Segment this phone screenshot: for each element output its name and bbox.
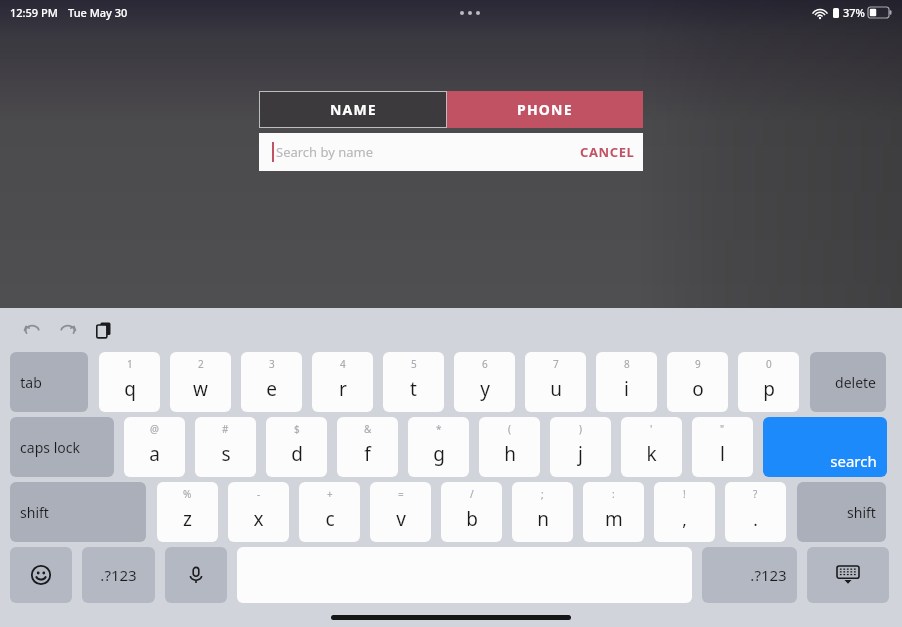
button[interactable]: ( xyxy=(479,417,540,477)
staticText: e xyxy=(266,376,277,402)
staticText: w xyxy=(193,376,208,402)
button[interactable]: : xyxy=(583,482,644,542)
staticText: l xyxy=(720,441,725,467)
staticText: CANCEL xyxy=(580,143,635,161)
staticText: NAME xyxy=(330,100,377,119)
staticText: t xyxy=(410,376,417,402)
staticText: n xyxy=(537,506,549,532)
staticText: - xyxy=(257,487,261,501)
button[interactable]: ) xyxy=(550,417,611,477)
staticText: shift xyxy=(847,503,876,522)
staticText: h xyxy=(504,441,516,467)
staticText: q xyxy=(124,376,136,402)
staticText: s xyxy=(221,441,231,467)
staticText: . xyxy=(753,508,758,531)
button[interactable]: ; xyxy=(512,482,573,542)
button[interactable]: 8 xyxy=(596,352,657,412)
button[interactable]: ! xyxy=(654,482,715,542)
staticText: & xyxy=(364,422,372,436)
button[interactable]: .?123 xyxy=(702,547,797,603)
staticText: g xyxy=(433,441,445,467)
button[interactable]: Paste xyxy=(86,312,122,348)
staticText: b xyxy=(466,506,478,532)
staticText: ? xyxy=(753,487,758,501)
button[interactable]: .?123 xyxy=(82,547,155,603)
button[interactable]: 7 xyxy=(525,352,586,412)
button[interactable]: " xyxy=(692,417,753,477)
button[interactable] xyxy=(165,547,227,603)
button[interactable]: 0 xyxy=(738,352,799,412)
staticText: * xyxy=(436,422,442,436)
staticText: ) xyxy=(579,422,582,436)
button[interactable]: 5 xyxy=(383,352,444,412)
button[interactable]: caps lock xyxy=(10,417,114,477)
button[interactable]: Undo xyxy=(14,312,50,348)
button[interactable]: % xyxy=(157,482,218,542)
staticText: PHONE xyxy=(517,100,573,119)
staticText: @ xyxy=(150,422,159,436)
staticText: f xyxy=(364,441,371,467)
staticText: u xyxy=(550,376,562,402)
staticText: 5 xyxy=(411,357,417,371)
button[interactable]: @ xyxy=(124,417,185,477)
button[interactable]: / xyxy=(441,482,502,542)
button[interactable]: 4 xyxy=(312,352,373,412)
staticText: 4 xyxy=(340,357,346,371)
staticText: 7 xyxy=(553,357,559,371)
button[interactable]: $ xyxy=(266,417,327,477)
button[interactable]: - xyxy=(228,482,289,542)
button[interactable]: delete xyxy=(810,352,886,412)
staticText: ' xyxy=(650,422,653,436)
staticText: 12:59 PM xyxy=(10,5,58,20)
button[interactable] xyxy=(10,547,72,603)
button[interactable]: shift xyxy=(797,482,886,542)
staticText: search xyxy=(830,451,877,471)
staticText: 8 xyxy=(624,357,630,371)
staticText: " xyxy=(720,422,725,436)
staticText: : xyxy=(612,487,615,501)
staticText: , xyxy=(682,508,687,531)
staticText: o xyxy=(692,376,704,402)
staticText: + xyxy=(327,487,333,501)
button[interactable]: 6 xyxy=(454,352,515,412)
staticText: = xyxy=(398,487,404,501)
button[interactable] xyxy=(807,547,889,603)
button[interactable]: + xyxy=(299,482,360,542)
button[interactable]: PHONE xyxy=(447,91,643,128)
staticText: c xyxy=(325,506,335,532)
button[interactable]: ' xyxy=(621,417,682,477)
button[interactable]: CANCEL xyxy=(572,137,643,167)
button[interactable]: # xyxy=(195,417,256,477)
staticText: z xyxy=(183,506,192,532)
staticText: x xyxy=(253,506,264,532)
button[interactable]: tab xyxy=(10,352,88,412)
button[interactable]: * xyxy=(408,417,469,477)
button[interactable]: 1 xyxy=(99,352,160,412)
staticText: / xyxy=(470,487,474,501)
button[interactable]: 3 xyxy=(241,352,302,412)
staticText: # xyxy=(222,422,229,436)
staticText: i xyxy=(624,376,629,402)
button[interactable]: shift xyxy=(10,482,146,542)
button[interactable]: search xyxy=(763,417,887,477)
staticText: a xyxy=(149,441,160,467)
staticText: .?123 xyxy=(100,565,137,585)
staticText: j xyxy=(578,441,583,467)
staticText: 37% xyxy=(843,5,865,20)
button[interactable]: ? xyxy=(725,482,786,542)
button[interactable]: NAME xyxy=(259,91,447,128)
staticText: p xyxy=(763,376,775,402)
staticText: ( xyxy=(508,422,511,436)
staticText: 2 xyxy=(198,357,204,371)
staticText: Tue May 30 xyxy=(68,5,128,20)
staticText: ! xyxy=(683,487,686,501)
staticText: tab xyxy=(20,373,42,392)
button[interactable]: Search by name xyxy=(259,133,643,171)
button[interactable]: 2 xyxy=(170,352,231,412)
button[interactable]: = xyxy=(370,482,431,542)
button[interactable]: & xyxy=(337,417,398,477)
button[interactable]: 9 xyxy=(667,352,728,412)
button[interactable]: Redo xyxy=(50,312,86,348)
staticText: y xyxy=(480,376,490,402)
